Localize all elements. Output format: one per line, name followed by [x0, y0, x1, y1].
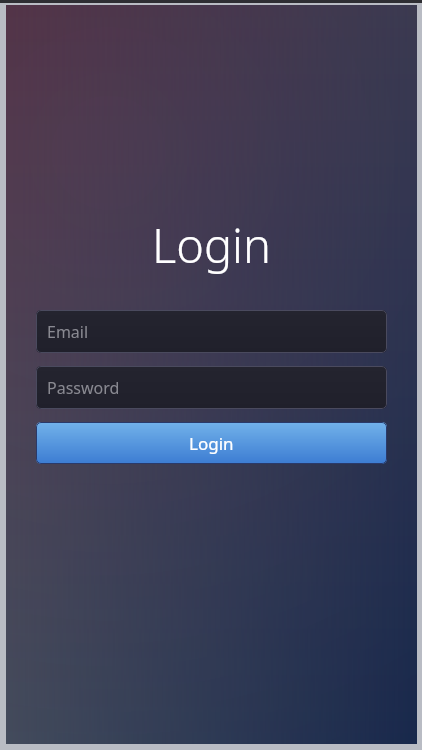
staticText: Password — [47, 377, 120, 399]
staticText: Email — [47, 321, 89, 343]
button[interactable]: Email — [36, 310, 387, 353]
staticText: Login — [36, 213, 387, 277]
staticText: Login — [189, 432, 234, 455]
button[interactable]: Password — [36, 366, 387, 409]
button[interactable]: Login — [36, 422, 387, 464]
